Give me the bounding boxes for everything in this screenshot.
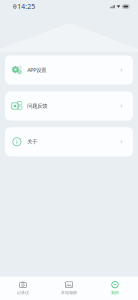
button[interactable]: 我的 xyxy=(92,276,138,300)
staticText: APP设置 xyxy=(27,66,46,73)
staticText: 记录仪 xyxy=(17,290,29,295)
staticText: 14:25 xyxy=(17,2,35,11)
staticText: 我的 xyxy=(111,290,119,295)
staticText: 关于 xyxy=(27,138,37,145)
button[interactable]: APP设置 xyxy=(5,55,133,85)
button[interactable]: 问题反馈 xyxy=(5,91,133,120)
button[interactable]: 本地相册 xyxy=(46,276,92,300)
staticText: 问题反馈 xyxy=(27,103,47,109)
button[interactable]: 关于 xyxy=(5,127,133,156)
staticText: 本地相册 xyxy=(61,290,77,295)
button[interactable]: 记录仪 xyxy=(0,276,46,300)
